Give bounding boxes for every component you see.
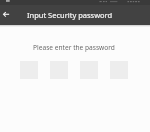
button[interactable]: Navigate up (0, 7, 15, 23)
staticText: Please enter the password (33, 43, 115, 52)
staticText: Input Security password (27, 10, 113, 20)
